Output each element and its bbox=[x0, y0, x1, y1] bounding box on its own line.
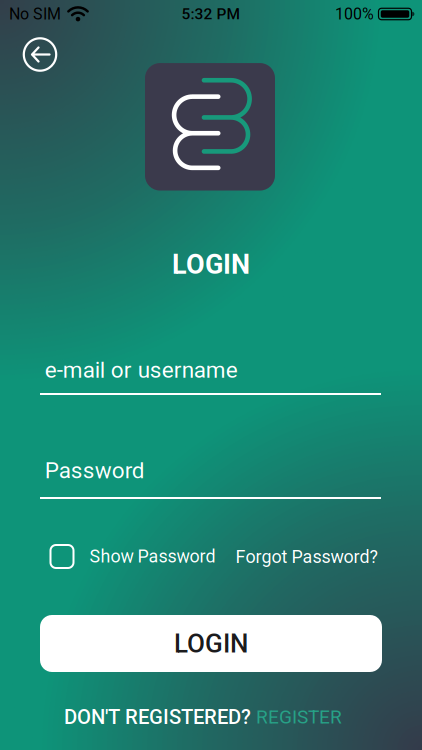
staticText: Show Password bbox=[89, 546, 215, 567]
staticText: Forgot Password? bbox=[235, 546, 377, 567]
staticText: DON'T REGISTERED? bbox=[64, 705, 251, 729]
staticText: 5:32 PM bbox=[181, 5, 240, 23]
staticText: e-mail or username bbox=[45, 357, 238, 383]
staticText: REGISTER bbox=[256, 706, 342, 728]
staticText: LOGIN bbox=[174, 628, 248, 659]
staticText: Password bbox=[45, 457, 145, 484]
staticText: 100% bbox=[335, 5, 374, 23]
button[interactable]: LOGIN bbox=[40, 615, 382, 672]
button[interactable]: Show Password bbox=[50, 545, 215, 568]
staticText: LOGIN bbox=[172, 249, 250, 280]
button[interactable] bbox=[22, 36, 58, 72]
button[interactable]: e-mail or username bbox=[40, 345, 381, 395]
button[interactable]: DON'T REGISTERED? bbox=[64, 705, 342, 729]
staticText: No SIM bbox=[9, 5, 61, 23]
button[interactable]: Password bbox=[40, 449, 381, 499]
button[interactable]: Forgot Password? bbox=[235, 546, 377, 567]
